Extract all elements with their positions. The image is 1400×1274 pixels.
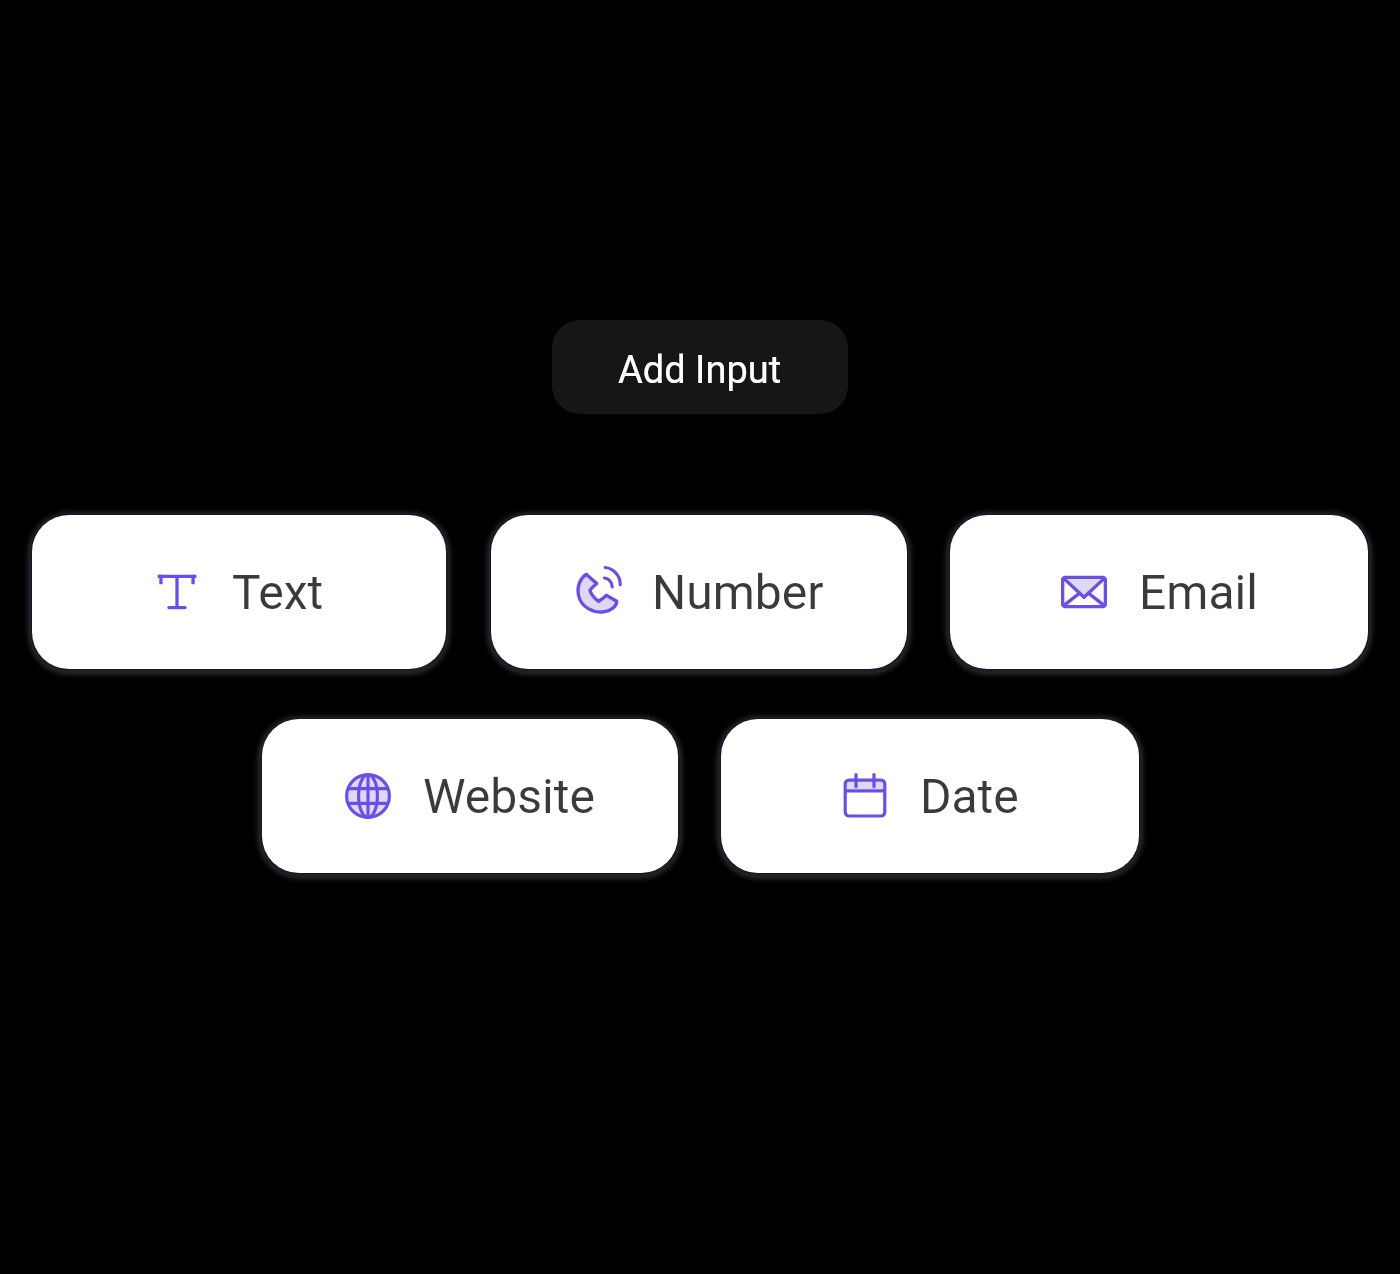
other: Phone number input [574,569,620,615]
staticText: Website [423,768,595,824]
staticText: Date [920,768,1019,824]
button[interactable]: Phone number input [491,515,907,669]
other: Email input [1061,569,1107,615]
button[interactable]: Email input [950,515,1368,669]
button[interactable]: Add Input [552,320,848,414]
staticText: Number [652,564,824,620]
button[interactable]: Website input [262,719,678,873]
button[interactable]: Date input [721,719,1139,873]
staticText: Add Input [618,348,782,393]
other: Date input [842,773,888,819]
other: Website input [345,773,391,819]
button[interactable]: Text input [32,515,446,669]
other: Text input [154,569,200,615]
staticText: Text [232,564,324,620]
staticText: Email [1139,564,1258,620]
